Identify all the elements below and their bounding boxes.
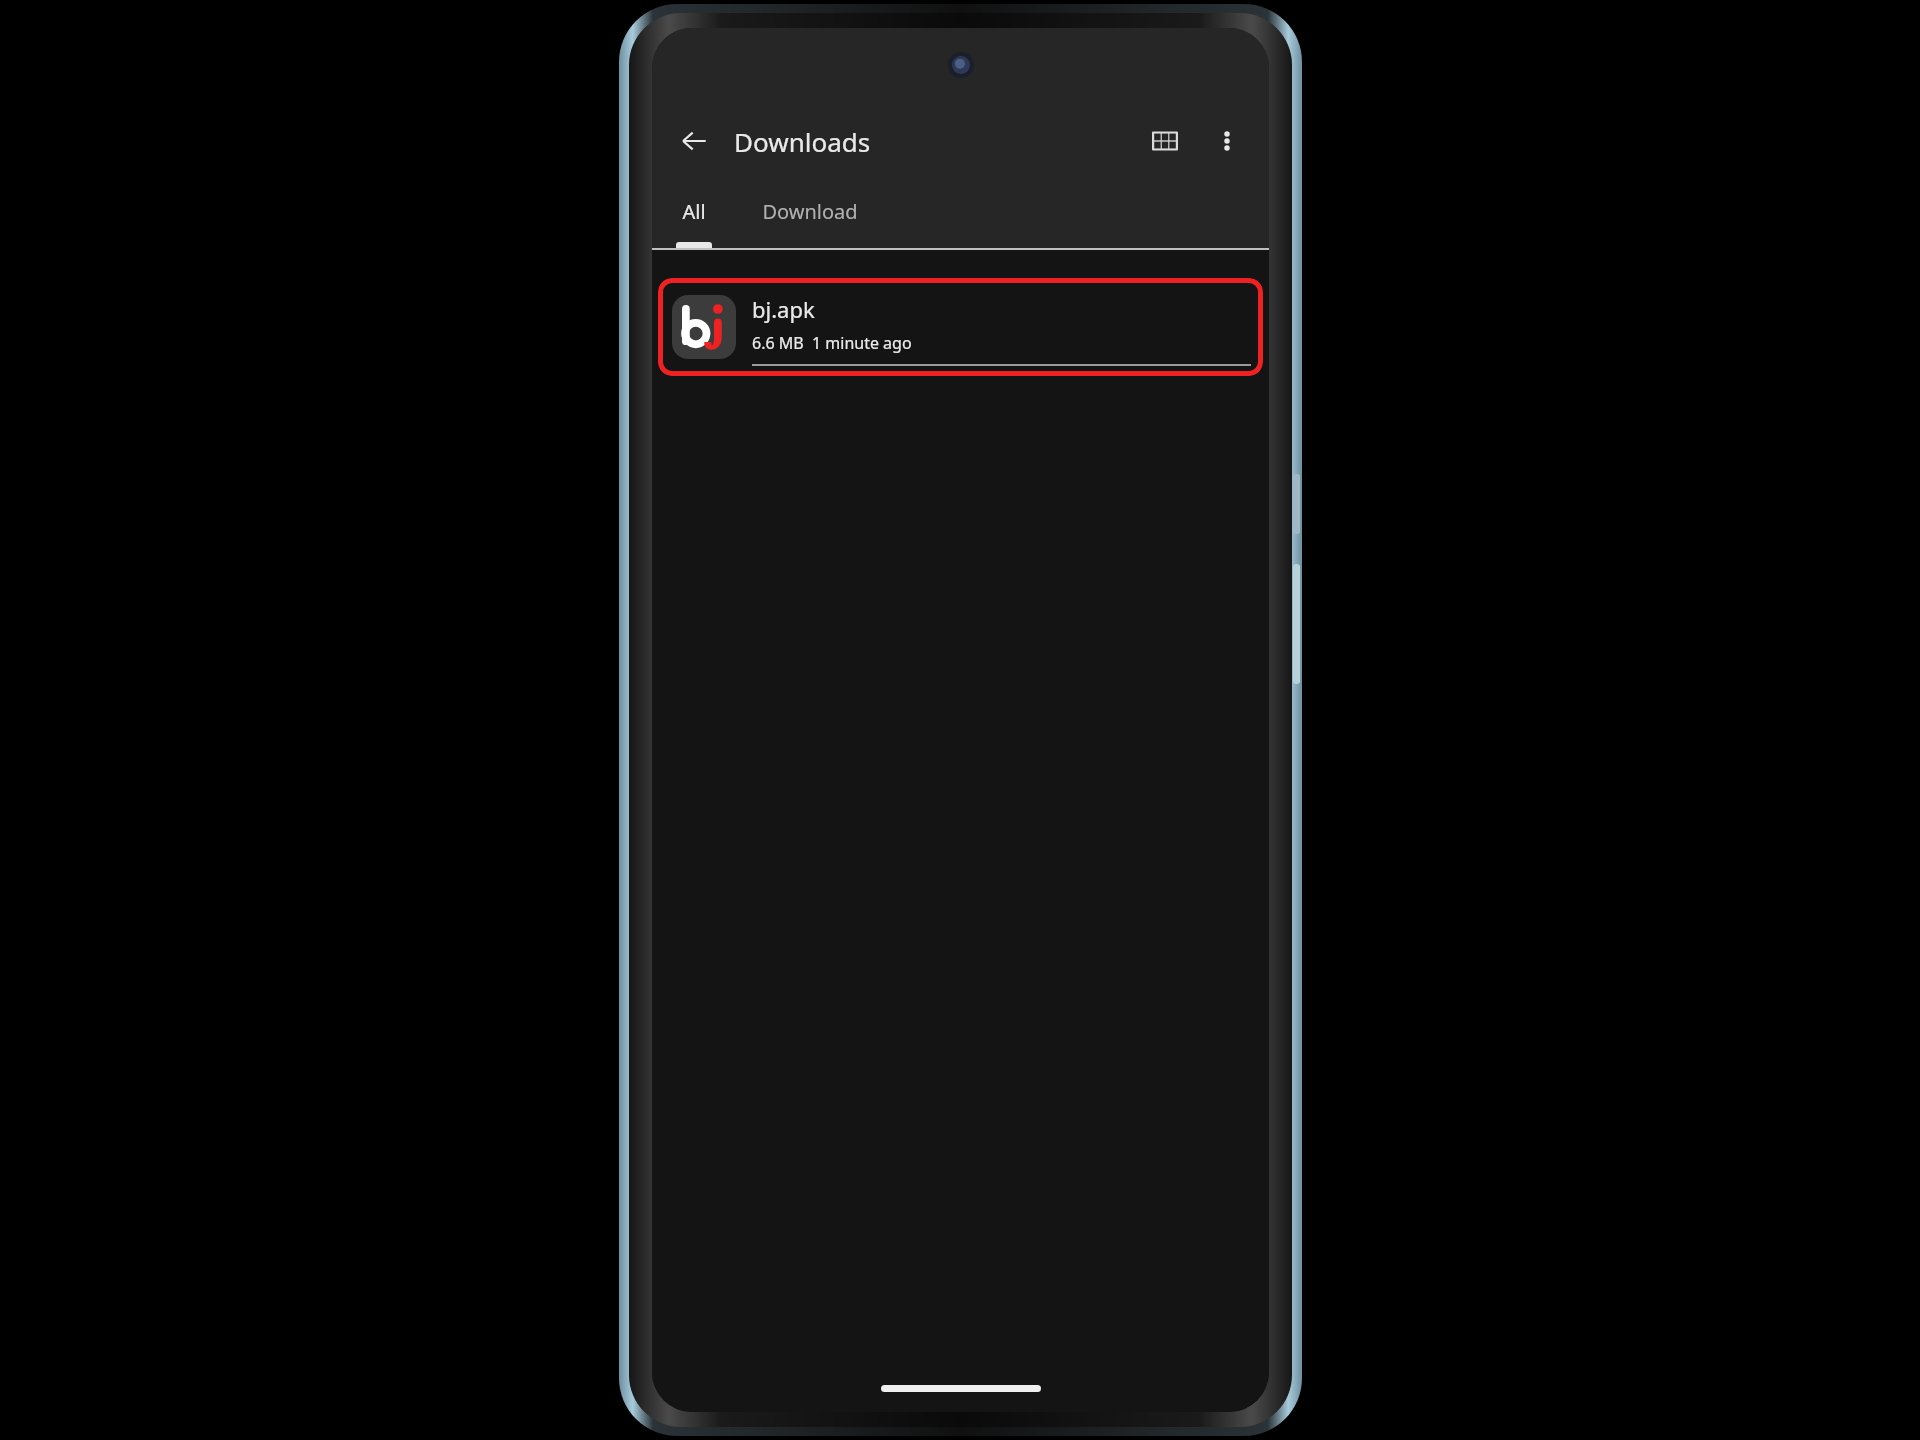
button[interactable]: Back [670,117,718,165]
staticText: bj.apk [752,294,815,324]
button[interactable]: Grid view [1141,117,1189,165]
staticText: All [682,198,706,225]
button[interactable]: More options [1203,117,1251,165]
button[interactable]: Download [736,180,884,242]
staticText: 6.6 MB 1 minute ago [752,332,912,354]
staticText: Download [762,198,858,225]
staticText: Downloads [734,124,871,159]
button[interactable]: bj.apk [658,278,1263,376]
button[interactable]: All [652,180,736,242]
